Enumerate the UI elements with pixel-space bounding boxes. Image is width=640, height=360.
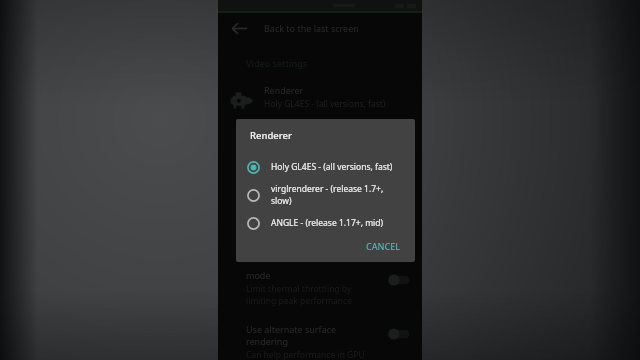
button[interactable]: mode — [218, 269, 422, 307]
button[interactable]: Renderer — [218, 82, 422, 119]
staticText: Video settings — [246, 57, 308, 69]
staticText: ANGLE - (release 1.17+, mid) — [271, 217, 384, 229]
button[interactable]: Holy GL4ES - (all versions, fast) — [236, 153, 415, 181]
button[interactable]: CANCEL — [360, 237, 407, 255]
button[interactable]: Use alternate surface rendering — [218, 323, 422, 360]
staticText: Holy GL4ES - (all versions, fast) — [271, 161, 393, 173]
staticText: Use alternate surface rendering — [246, 323, 380, 347]
button[interactable]: Toggle — [386, 273, 412, 287]
button[interactable]: virglrenderer - (release 1.7+, — [236, 181, 415, 209]
staticText: Renderer — [250, 129, 293, 142]
button[interactable]: ANGLE - (release 1.17+, mid) — [236, 209, 415, 237]
other: Back to the last screen — [230, 19, 249, 38]
staticText: Back to the last screen — [264, 22, 359, 34]
staticText: virglrenderer - (release 1.7+, — [271, 183, 384, 195]
staticText: Can help performance in GPU — [246, 349, 365, 360]
button[interactable]: Toggle — [386, 327, 412, 341]
staticText: CANCEL — [366, 240, 401, 252]
staticText: Holy GL4ES - (all versions, fast) — [264, 98, 386, 110]
staticText: Limit thermal throttling by — [246, 283, 352, 295]
staticText: Renderer — [264, 84, 304, 96]
staticText: slow) — [271, 195, 292, 207]
staticText: mode — [246, 269, 271, 281]
button[interactable]: Back to the last screen — [218, 13, 422, 43]
staticText: limiting peak performance — [246, 295, 352, 307]
